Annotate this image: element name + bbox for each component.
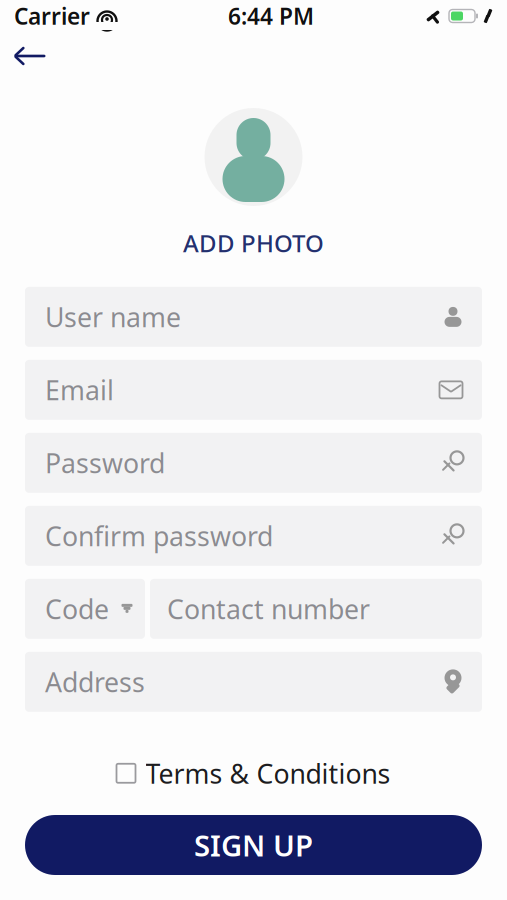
staticText: Confirm password xyxy=(45,518,273,554)
staticText: ADD PHOTO xyxy=(183,227,324,259)
staticText: Code xyxy=(45,591,109,627)
staticText: 6:44 PM xyxy=(228,1,314,31)
button[interactable]: Address xyxy=(25,652,482,712)
button[interactable]: Back xyxy=(0,34,60,78)
button[interactable]: User name xyxy=(25,287,482,347)
staticText: User name xyxy=(45,299,181,335)
button[interactable]: Contact number xyxy=(150,579,482,639)
staticText: Terms & Conditions xyxy=(145,756,390,791)
button[interactable]: Password xyxy=(25,433,482,493)
staticText: Password xyxy=(45,445,165,481)
staticText: Email xyxy=(45,372,114,408)
staticText: Contact number xyxy=(167,591,370,627)
button[interactable]: Email xyxy=(25,360,482,420)
button[interactable]: Terms & Conditions xyxy=(100,746,406,801)
staticText: SIGN UP xyxy=(194,825,313,864)
button[interactable]: Code xyxy=(25,579,145,639)
staticText: Carrier xyxy=(14,1,90,31)
button[interactable]: SIGN UP xyxy=(25,815,482,875)
button[interactable]: ADD PHOTO xyxy=(183,108,324,259)
staticText: Address xyxy=(45,664,145,700)
button[interactable]: Confirm password xyxy=(25,506,482,566)
